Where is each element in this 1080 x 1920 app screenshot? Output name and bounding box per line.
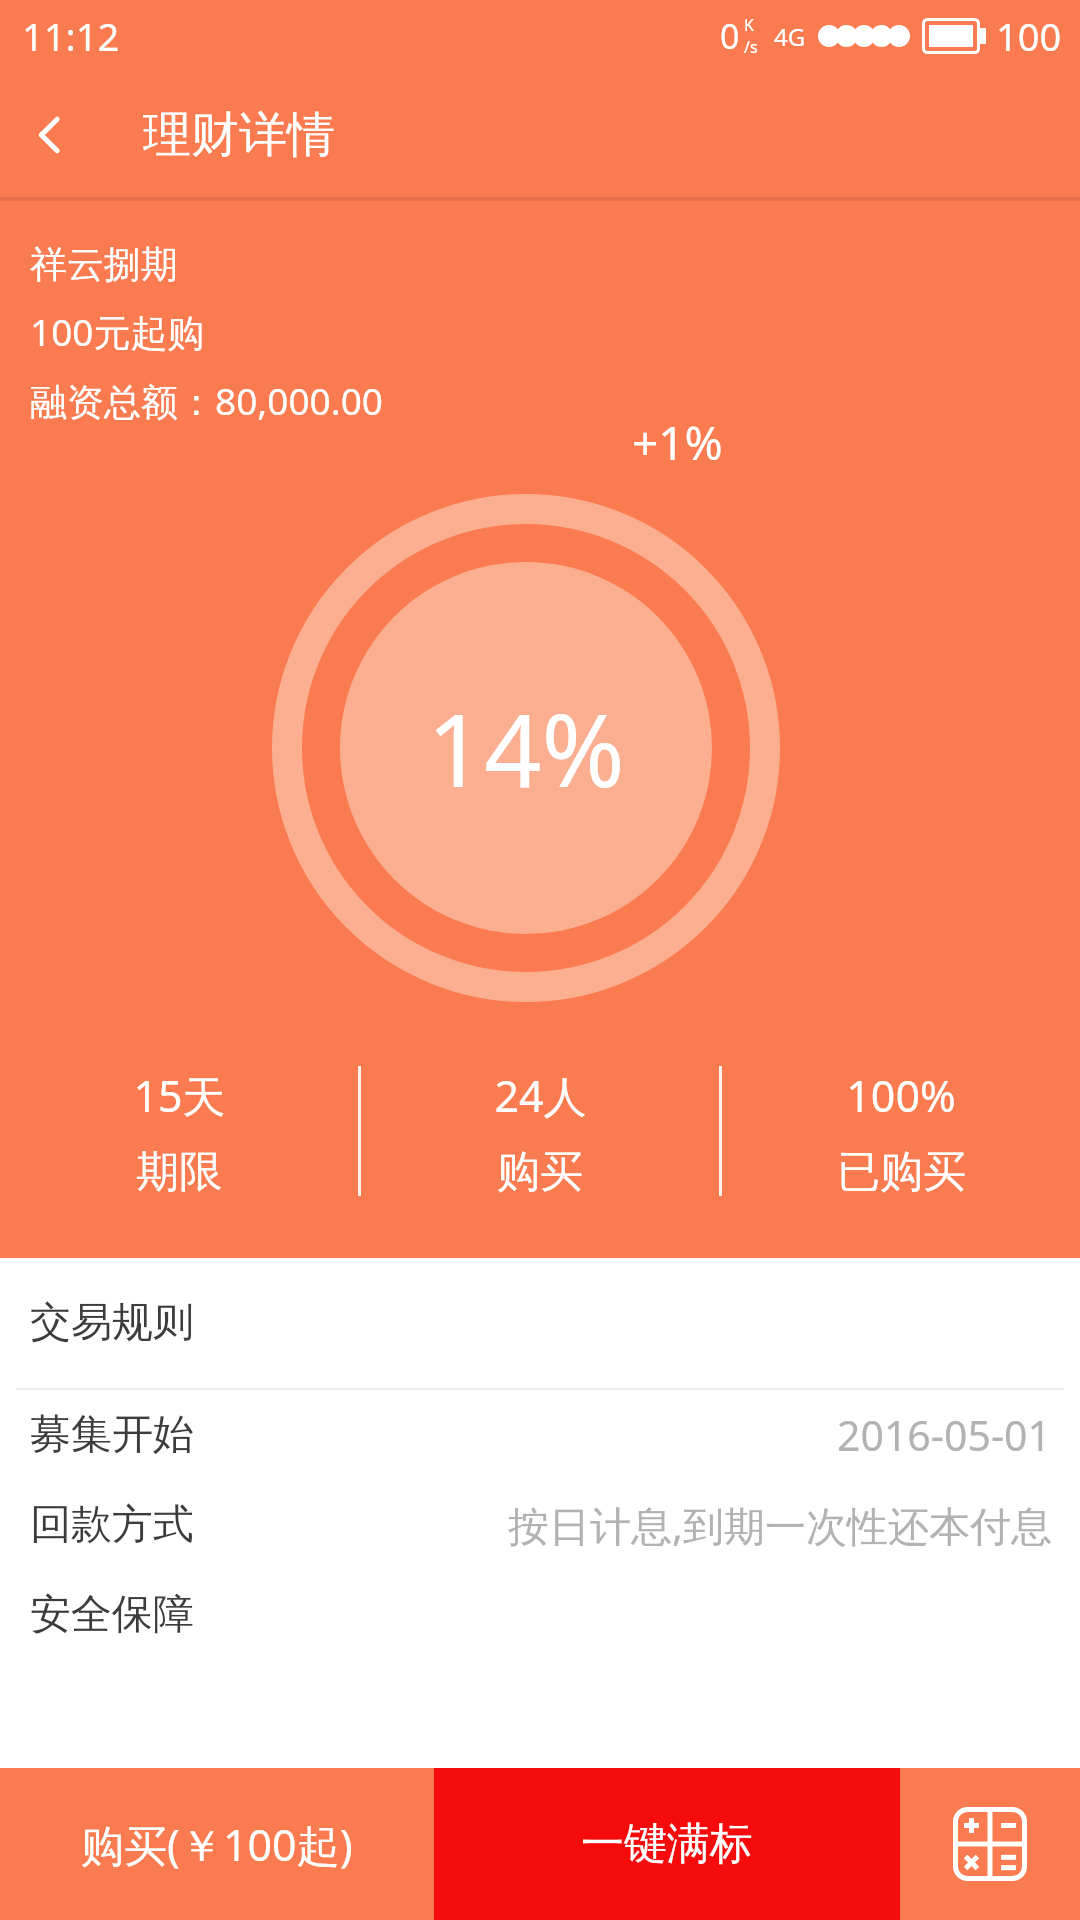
staticText: 2016-05-01 <box>837 1407 1052 1463</box>
staticText: /s <box>744 36 758 58</box>
staticText: 14% <box>427 680 625 816</box>
staticText: 100元起购 <box>30 306 205 357</box>
staticText: 15天 <box>133 1066 226 1125</box>
staticText: 按日计息,到期一次性还本付息 <box>508 1497 1052 1553</box>
button[interactable]: 购买(￥100起) <box>0 1768 434 1920</box>
staticText: 购买 <box>497 1145 583 1199</box>
button[interactable]: 募集开始 <box>0 1390 1080 1480</box>
staticText: 理财详情 <box>143 105 335 165</box>
button[interactable]: 回款方式 <box>0 1480 1080 1570</box>
staticText: 融资总额：80,000.00 <box>30 375 383 426</box>
staticText: 交易规则 <box>30 1297 194 1349</box>
button[interactable]: 安全保障 <box>0 1570 1080 1660</box>
staticText: 100 <box>996 10 1062 62</box>
button[interactable]: 交易规则 <box>0 1258 1080 1388</box>
staticText: 已购买 <box>837 1145 966 1199</box>
button[interactable]: 24人 <box>361 1066 719 1199</box>
staticText: 募集开始 <box>30 1409 194 1461</box>
staticText: +1% <box>632 411 723 474</box>
staticText: 4G <box>774 20 806 53</box>
staticText: K <box>744 14 754 36</box>
button[interactable]: 一键满标 <box>434 1768 900 1920</box>
staticText: 100% <box>846 1066 956 1125</box>
button[interactable]: 100% <box>722 1066 1080 1199</box>
staticText: 安全保障 <box>30 1589 194 1641</box>
staticText: 购买(￥100起) <box>81 1815 353 1874</box>
staticText: 祥云捌期 <box>30 241 178 288</box>
staticText: 一键满标 <box>581 1817 753 1871</box>
staticText: 回款方式 <box>30 1499 194 1551</box>
button[interactable]: 15天 <box>0 1066 358 1199</box>
staticText: 期限 <box>136 1145 222 1199</box>
staticText: 11:12 <box>22 10 120 62</box>
staticText: 24人 <box>494 1066 587 1125</box>
button[interactable]: Calculator <box>900 1768 1080 1920</box>
staticText: 0 <box>720 13 740 59</box>
button[interactable]: Back <box>0 85 100 185</box>
